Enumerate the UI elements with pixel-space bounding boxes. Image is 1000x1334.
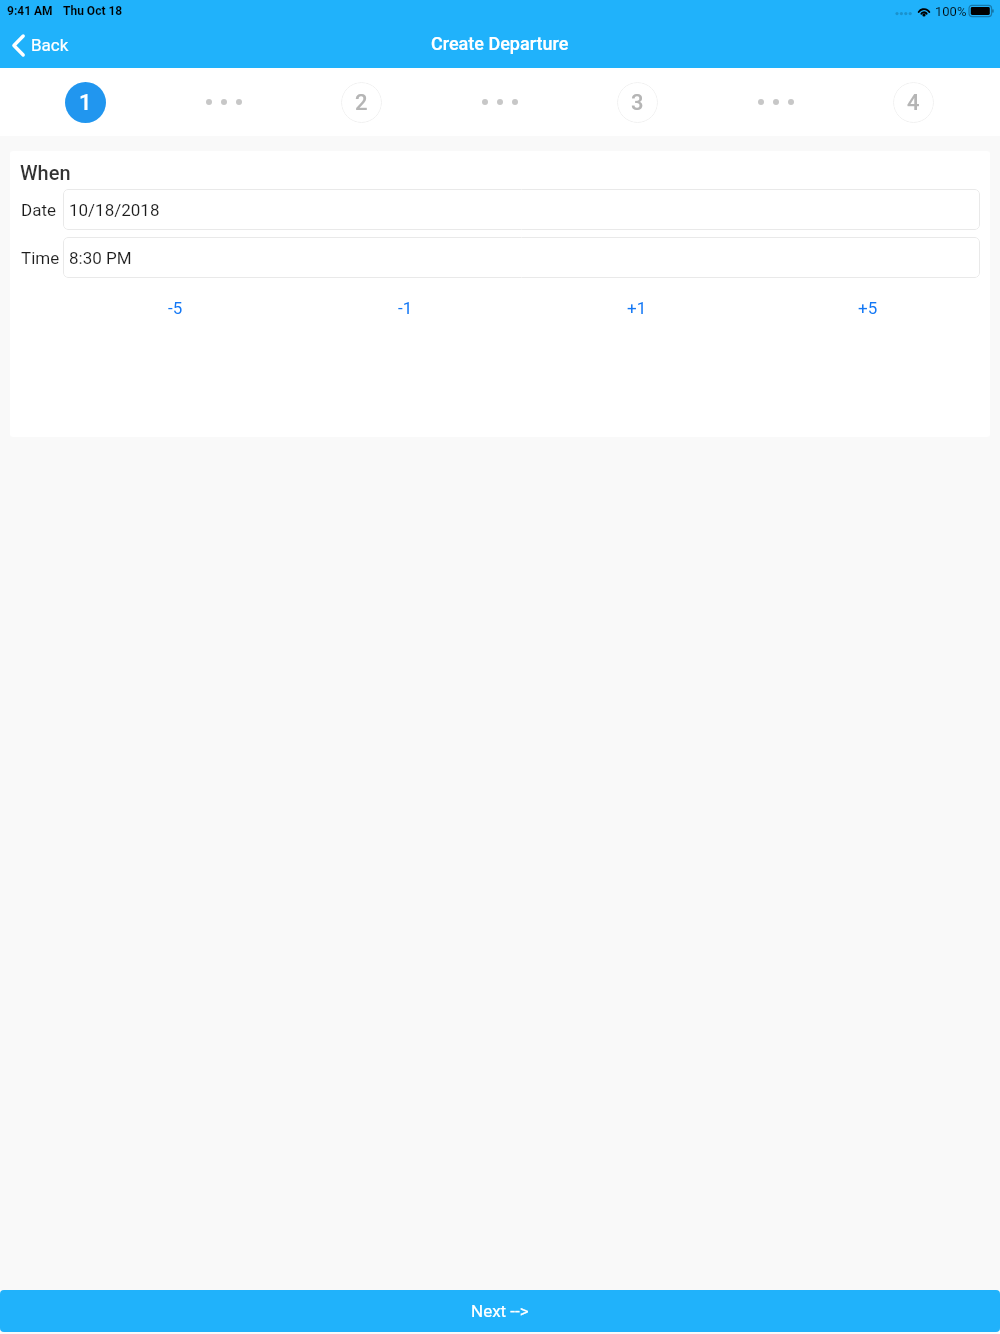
button[interactable]: +5 xyxy=(752,298,983,318)
staticText: +1 xyxy=(627,298,647,318)
button[interactable]: -1 xyxy=(290,298,521,318)
staticText: +5 xyxy=(858,298,878,318)
staticText: 10/18/2018 xyxy=(69,200,160,220)
staticText: 4 xyxy=(907,90,920,116)
staticText: Thu Oct 18 xyxy=(63,4,123,18)
button[interactable]: Step 1 xyxy=(65,82,106,123)
button[interactable]: Edit Date xyxy=(63,189,980,230)
button[interactable]: Next --> xyxy=(0,1290,1000,1332)
staticText: Back xyxy=(31,35,69,55)
button[interactable]: Back xyxy=(0,27,83,64)
staticText: Time xyxy=(21,248,60,268)
staticText: 9:41 AM xyxy=(7,4,53,18)
staticText: Date xyxy=(21,200,56,220)
button[interactable]: -5 xyxy=(60,298,290,318)
staticText: 3 xyxy=(631,90,644,116)
staticText: Next --> xyxy=(471,1301,529,1321)
staticText: -5 xyxy=(168,298,183,318)
staticText: -1 xyxy=(398,298,413,318)
button[interactable]: Edit Time xyxy=(63,237,980,278)
button[interactable]: Step 2 xyxy=(341,82,382,123)
staticText: When xyxy=(20,161,71,184)
button[interactable]: Step 3 xyxy=(617,82,658,123)
button[interactable]: +1 xyxy=(521,298,752,318)
staticText: 1 xyxy=(79,90,92,116)
staticText: Create Departure xyxy=(431,33,569,54)
staticText: 8:30 PM xyxy=(69,248,132,268)
staticText: 100% xyxy=(935,4,967,19)
button[interactable]: Step 4 xyxy=(893,82,934,123)
staticText: 2 xyxy=(355,90,368,116)
